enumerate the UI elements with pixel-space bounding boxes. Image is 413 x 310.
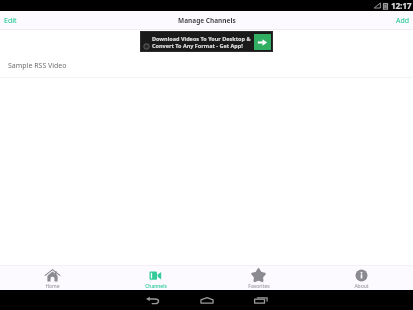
staticText: About — [354, 283, 369, 290]
button[interactable]: Sample RSS Video — [0, 54, 413, 78]
button[interactable]: Add — [388, 13, 413, 29]
button[interactable]: Channels — [104, 266, 207, 290]
staticText: Download Videos To Your Desktop & — [152, 35, 251, 42]
staticText: Channels — [145, 283, 167, 290]
button[interactable]: Edit — [0, 13, 25, 29]
staticText: Home — [45, 283, 60, 290]
staticText: Add — [396, 16, 410, 26]
staticText: 12:17 — [391, 0, 412, 11]
button[interactable]: About — [310, 266, 413, 290]
button[interactable]: Back — [136, 290, 170, 310]
staticText: Convert To Any Format - Get App! — [152, 42, 243, 49]
staticText: Edit — [4, 16, 17, 26]
button[interactable]: Recent apps — [244, 290, 278, 310]
staticText: Manage Channels — [178, 16, 236, 25]
staticText: Favorites — [248, 283, 270, 290]
button[interactable]: Home — [0, 266, 104, 290]
staticText: Sample RSS Video — [8, 61, 67, 71]
button[interactable]: Home — [190, 290, 224, 310]
button[interactable]: Favorites — [207, 266, 310, 290]
button[interactable]: Download Videos To Your Desktop & — [141, 32, 272, 51]
